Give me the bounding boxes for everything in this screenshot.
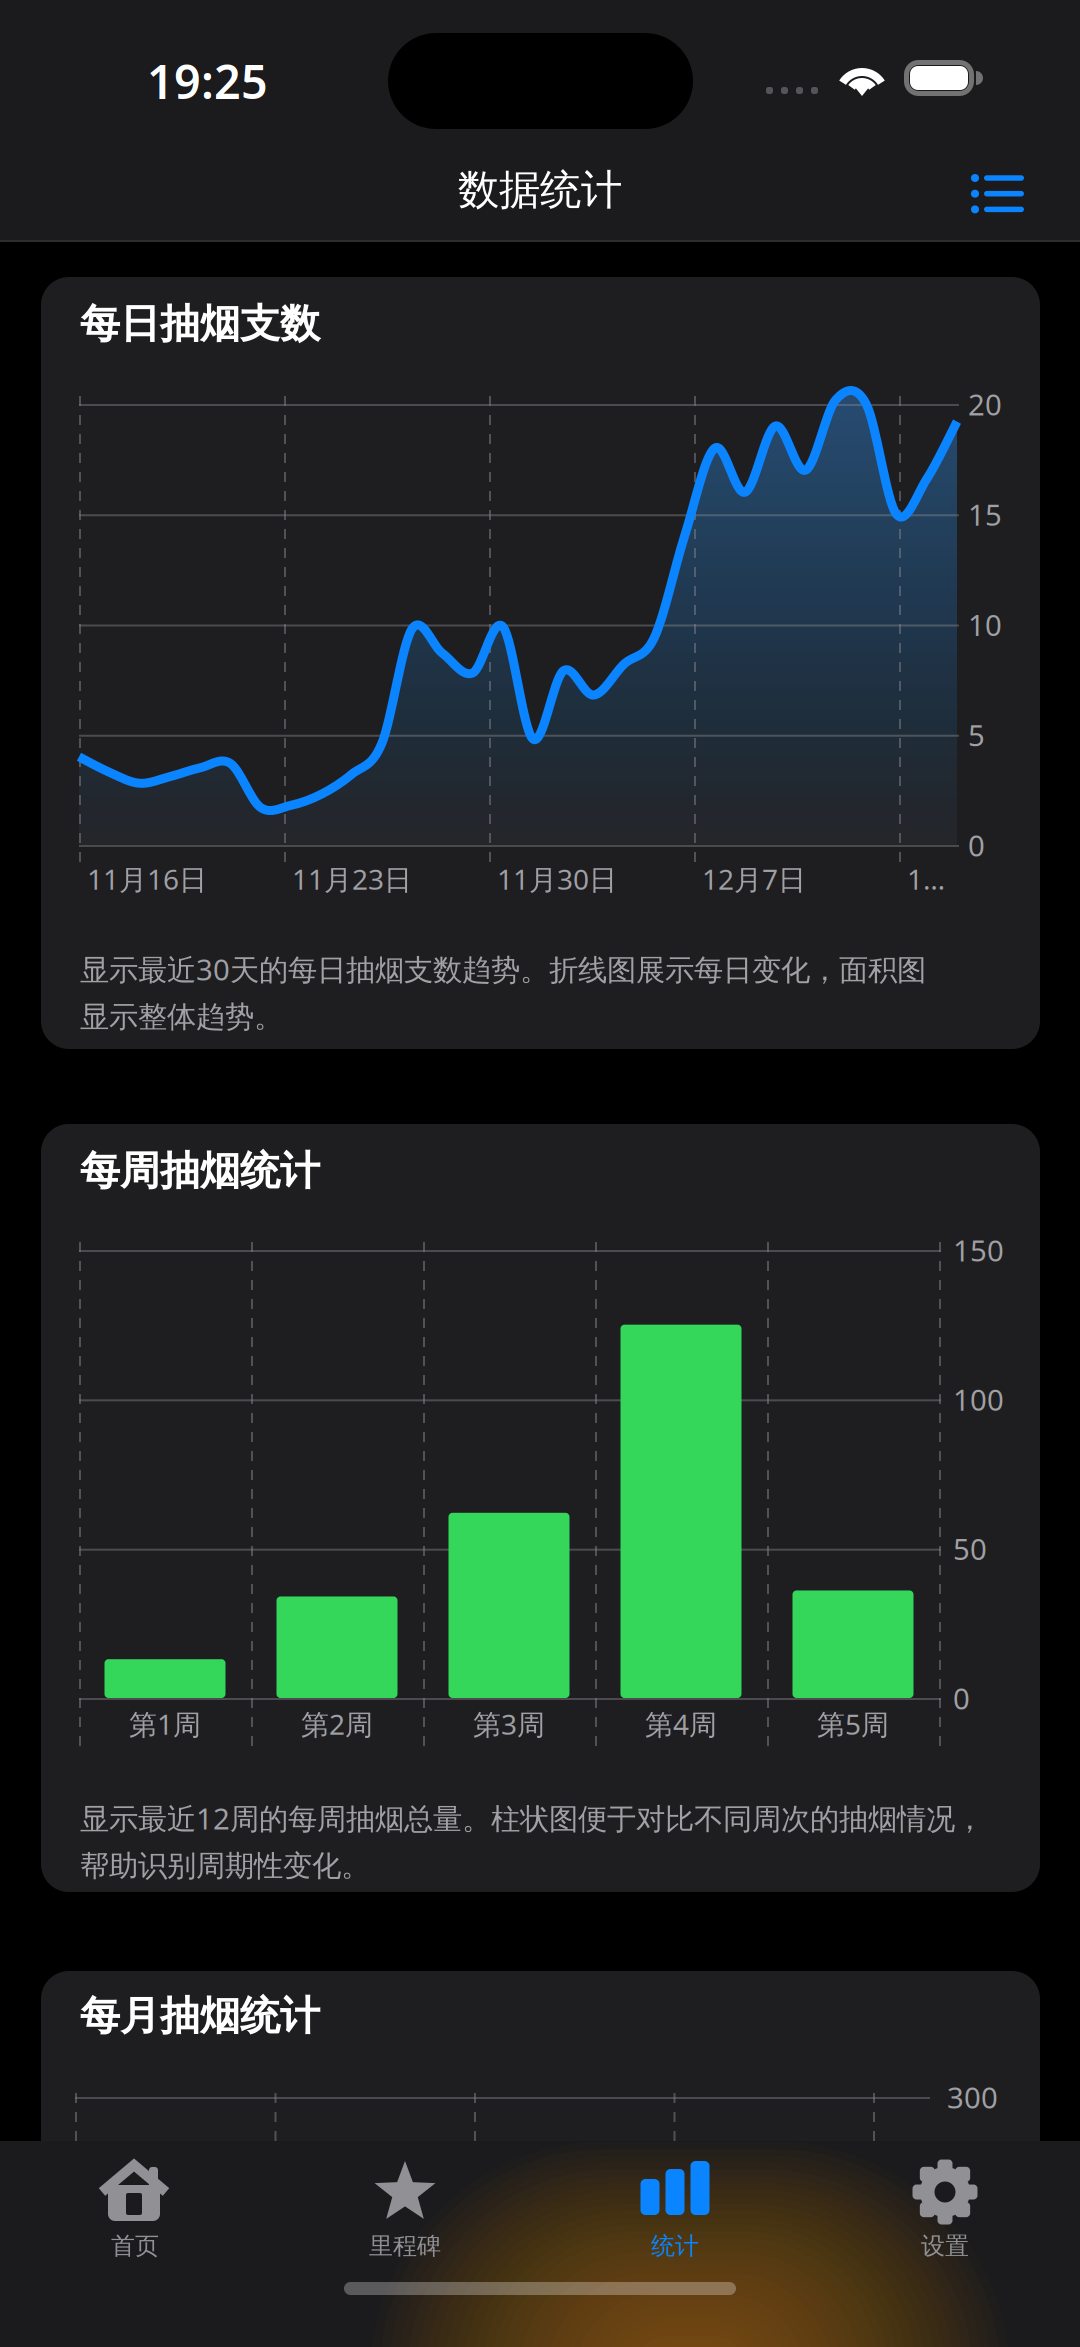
staticText: 每日抽烟支数 [80,299,320,348]
staticText: 统计 [651,2231,699,2261]
staticText: 第2周 [301,1705,373,1743]
staticText: 第4周 [645,1705,717,1743]
staticText: 1… [907,860,945,898]
staticText: 显示整体趋势。 [80,999,283,1035]
staticText: 11月16日 [87,860,207,898]
staticText: 设置 [921,2231,969,2261]
staticText: 显示最近30天的每日抽烟支数趋势。折线图展示每日变化，面积图 [80,949,926,988]
staticText: 19:25 [147,50,268,112]
staticText: 50 [953,1529,987,1568]
staticText: 数据统计 [458,165,622,215]
staticText: 11月23日 [292,860,412,898]
staticText: 100 [953,1380,1004,1419]
staticText: 首页 [111,2231,159,2261]
staticText: 每周抽烟统计 [80,1146,320,1195]
button[interactable]: 设置 [810,2161,1080,2265]
staticText: 帮助识别周期性变化。 [80,1848,370,1884]
staticText: 第1周 [129,1705,201,1743]
button[interactable]: 里程碑 [270,2161,540,2265]
staticText: 每月抽烟统计 [80,1991,320,2040]
staticText: 0 [953,1678,970,1717]
staticText: 150 [953,1230,1004,1269]
staticText: 0 [968,825,985,864]
staticText: 300 [947,2077,998,2116]
staticText: 第5周 [817,1705,889,1743]
staticText: 5 [968,715,985,754]
staticText: 10 [968,605,1002,644]
staticText: 11月30日 [497,860,617,898]
staticText: 12月7日 [702,860,806,898]
button[interactable]: 首页 [0,2161,270,2265]
staticText: 第3周 [473,1705,545,1743]
staticText: 显示最近12周的每周抽烟总量。柱状图便于对比不同周次的抽烟情况， [80,1798,984,1837]
staticText: 里程碑 [369,2231,441,2261]
button[interactable]: 统计 [540,2161,810,2265]
staticText: 15 [968,495,1002,534]
staticText: 20 [968,384,1002,423]
button[interactable]: 列表 [949,152,1046,235]
